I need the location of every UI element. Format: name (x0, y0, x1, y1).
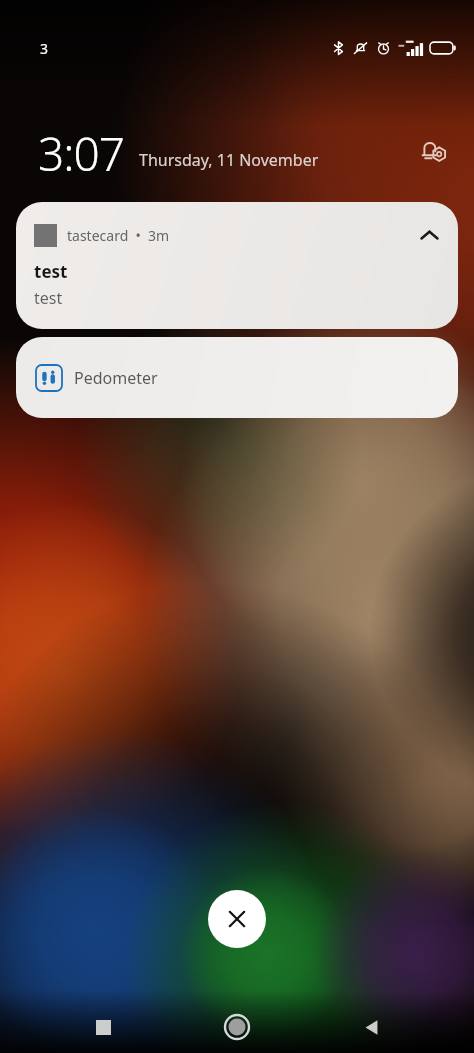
staticText: Pedometer (74, 367, 158, 389)
staticText: test (34, 287, 63, 309)
staticText: test (34, 260, 68, 283)
button[interactable]: Collapse (414, 220, 444, 250)
button[interactable]: Notification settings (414, 130, 454, 170)
button[interactable]: Back (347, 1003, 395, 1051)
staticText: tastecard • 3m (67, 226, 170, 245)
button[interactable]: Close (208, 890, 266, 948)
button[interactable]: Home (213, 1003, 261, 1051)
staticText: Thursday, 11 November (139, 149, 319, 171)
button[interactable]: Recents (79, 1003, 127, 1051)
button[interactable]: Pedometer (16, 337, 458, 418)
button[interactable]: tastecard • 3m (16, 202, 458, 329)
staticText: 3:07 (38, 122, 125, 178)
staticText: 3 (40, 39, 49, 58)
